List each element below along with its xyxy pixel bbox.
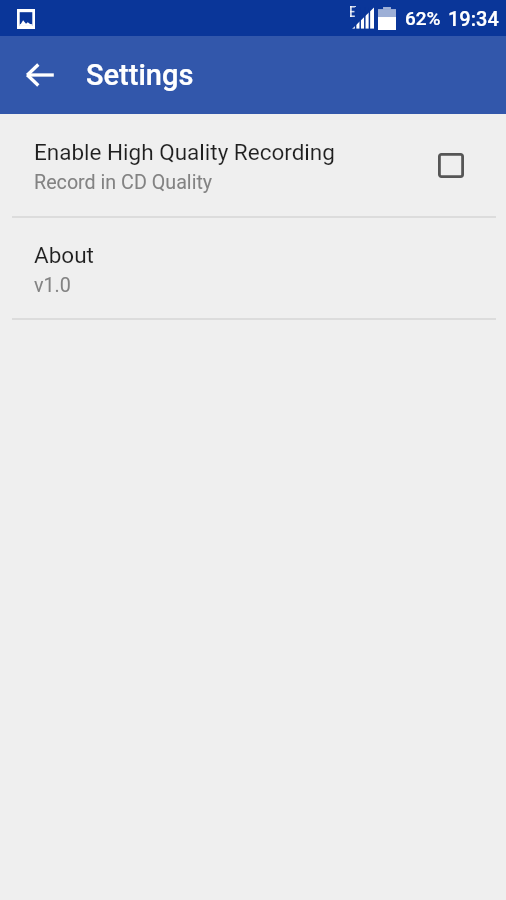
button[interactable]: About (0, 218, 506, 318)
staticText: v1.0 (34, 274, 71, 297)
button[interactable]: Back (16, 51, 64, 99)
staticText: About (34, 242, 94, 268)
staticText: 62% (405, 7, 441, 29)
button[interactable]: Enable High Quality Recording (0, 114, 506, 216)
staticText: Record in CD Quality (34, 171, 213, 194)
staticText: 19:34 (448, 7, 499, 30)
button[interactable]: Enable High Quality Recording, off (429, 143, 473, 187)
staticText: Settings (86, 58, 194, 92)
staticText: Enable High Quality Recording (34, 139, 335, 165)
